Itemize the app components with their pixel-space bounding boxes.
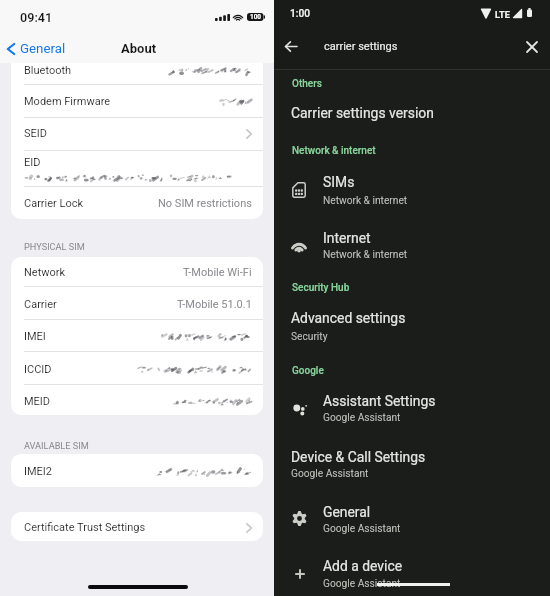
staticText: Assistant Settings [323,393,436,409]
staticText: Advanced settings [291,310,406,326]
staticText: Carrier [24,298,57,311]
staticText: LTE [495,9,510,20]
staticText: MEID [24,395,51,408]
staticText: Google Assistant [323,523,401,535]
staticText: Add a device [323,558,403,574]
button[interactable]: IMEI2 [11,456,263,486]
button[interactable]: SEID [11,117,263,150]
staticText: IMEI2 [24,465,53,478]
staticText: IMEI [24,330,46,343]
staticText: carrier settings [324,40,398,53]
button[interactable]: Carrier Lock [11,188,263,219]
staticText: Google [292,365,324,377]
button[interactable]: Internet [323,230,371,246]
staticText: Bluetooth [24,64,72,77]
staticText: Others [292,78,322,90]
staticText: General [20,41,66,57]
button[interactable]: Bluetooth [11,56,263,84]
staticText: Google Assistant [323,412,401,424]
button[interactable]: Carrier settings version [291,105,434,121]
button[interactable]: IMEI [11,321,263,351]
staticText: SIMs [323,174,355,190]
staticText: Carrier settings version [291,105,434,121]
button[interactable]: ICCID [11,354,263,384]
staticText: Google Assistant [291,468,369,480]
staticText: EID [24,156,41,169]
staticText: Network [24,266,66,279]
button[interactable]: Network [11,258,263,286]
staticText: Network & internet [323,249,408,261]
button[interactable]: Add a device [323,558,403,574]
button[interactable]: Modem Firmware [11,85,263,117]
staticText: Google Assistant [323,578,401,590]
button[interactable]: General [0,38,74,60]
staticText: PHYSICAL SIM [24,241,85,252]
staticText: T-Mobile 51.0.1 [177,298,252,311]
staticText: SEID [24,127,47,140]
staticText: ICCID [24,363,52,376]
staticText: 100 [250,13,261,21]
staticText: No SIM restrictions [158,197,252,210]
staticText: About [121,41,157,56]
staticText: Device & Call Settings [291,449,426,465]
staticText: Modem Firmware [24,95,111,108]
button[interactable]: General [323,504,371,520]
staticText: Carrier Lock [24,197,84,210]
staticText: Network & internet [292,145,376,157]
button[interactable]: Back [275,30,307,62]
staticText: Network & internet [323,195,408,207]
staticText: General [323,504,371,520]
button[interactable]: Certificate Trust Settings [11,514,263,541]
button[interactable]: EID [11,150,263,186]
staticText: AVAILABLE SIM [24,440,89,451]
staticText: Security Hub [292,282,350,294]
staticText: Internet [323,230,371,246]
staticText: 09:41 [20,10,53,25]
staticText: Certificate Trust Settings [24,521,146,534]
button[interactable]: Carrier [11,290,263,319]
staticText: 1:00 [290,8,311,20]
button[interactable]: MEID [11,387,263,415]
button[interactable]: Advanced settings [291,310,406,326]
staticText: T-Mobile Wi-Fi [183,266,252,279]
button[interactable]: SIMs [323,174,355,190]
staticText: Security [291,331,328,343]
button[interactable]: Clear search [516,31,548,63]
button[interactable]: Assistant Settings [323,393,436,409]
button[interactable]: Device & Call Settings [291,449,426,465]
